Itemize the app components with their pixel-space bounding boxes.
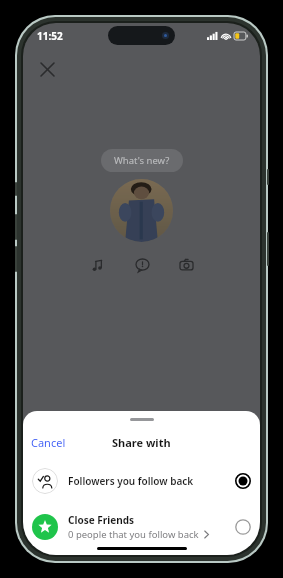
staticText: 0 people that you follow back: [68, 528, 199, 541]
staticText: Followers you follow back: [68, 474, 194, 488]
button[interactable]: Add music: [87, 254, 109, 276]
staticText: Close Friends: [68, 513, 134, 527]
button[interactable]: Cancel: [23, 433, 74, 452]
button[interactable]: Close Friends: [23, 507, 260, 547]
staticText: Cancel: [31, 435, 66, 450]
staticText: Share with: [112, 435, 171, 450]
button[interactable]: Prompt: [131, 254, 153, 276]
staticText: 11:52: [37, 29, 63, 43]
staticText: What's new?: [114, 154, 170, 167]
button[interactable]: Close: [33, 55, 61, 83]
button[interactable]: What's new?: [101, 149, 183, 172]
button[interactable]: Camera: [175, 254, 197, 276]
button[interactable]: Followers you follow back: [23, 463, 260, 499]
button[interactable]: [110, 179, 173, 242]
